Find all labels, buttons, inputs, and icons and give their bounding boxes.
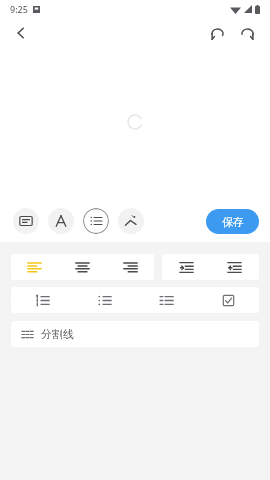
button[interactable]: Numbered list (11, 287, 73, 313)
button[interactable]: Align right (106, 254, 154, 280)
button[interactable]: Back (6, 18, 36, 48)
button[interactable]: Text format (48, 208, 74, 234)
button[interactable]: 保存 (206, 209, 259, 234)
staticText: 分割线 (41, 327, 74, 341)
button[interactable]: 分割线 (11, 321, 259, 347)
staticText: 保存 (222, 215, 244, 229)
button[interactable]: Bulleted list (73, 287, 135, 313)
button[interactable]: Align left (11, 254, 58, 280)
button[interactable]: Checklist (197, 287, 259, 313)
button[interactable]: Increase indent (162, 254, 210, 280)
button[interactable]: Effects (118, 208, 144, 234)
staticText: 9:25 (10, 3, 28, 15)
button[interactable]: Dashed list (135, 287, 197, 313)
button[interactable]: Insert image (13, 208, 39, 234)
button[interactable]: Paragraph (83, 208, 109, 234)
button[interactable]: Decrease indent (210, 254, 259, 280)
button[interactable]: Redo (232, 18, 262, 48)
button[interactable]: Undo (202, 18, 232, 48)
button[interactable]: Align center (58, 254, 106, 280)
